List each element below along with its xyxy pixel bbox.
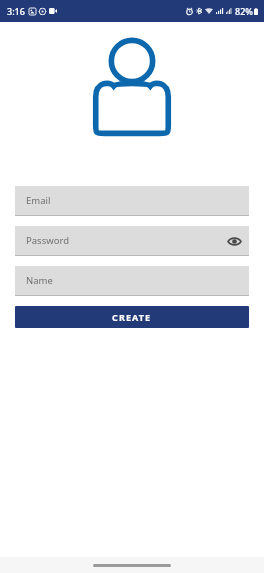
- staticText: Name: [26, 274, 53, 287]
- staticText: 3:16: [7, 5, 25, 17]
- staticText: 82%: [235, 5, 253, 17]
- button[interactable]: Show password: [227, 234, 241, 248]
- button[interactable]: CREATE: [15, 306, 249, 328]
- button[interactable]: Password: [15, 226, 249, 256]
- staticText: Password: [26, 234, 69, 247]
- button[interactable]: Email: [15, 186, 249, 216]
- staticText: CREATE: [112, 311, 152, 323]
- button[interactable]: Name: [15, 266, 249, 296]
- staticText: Email: [26, 194, 51, 207]
